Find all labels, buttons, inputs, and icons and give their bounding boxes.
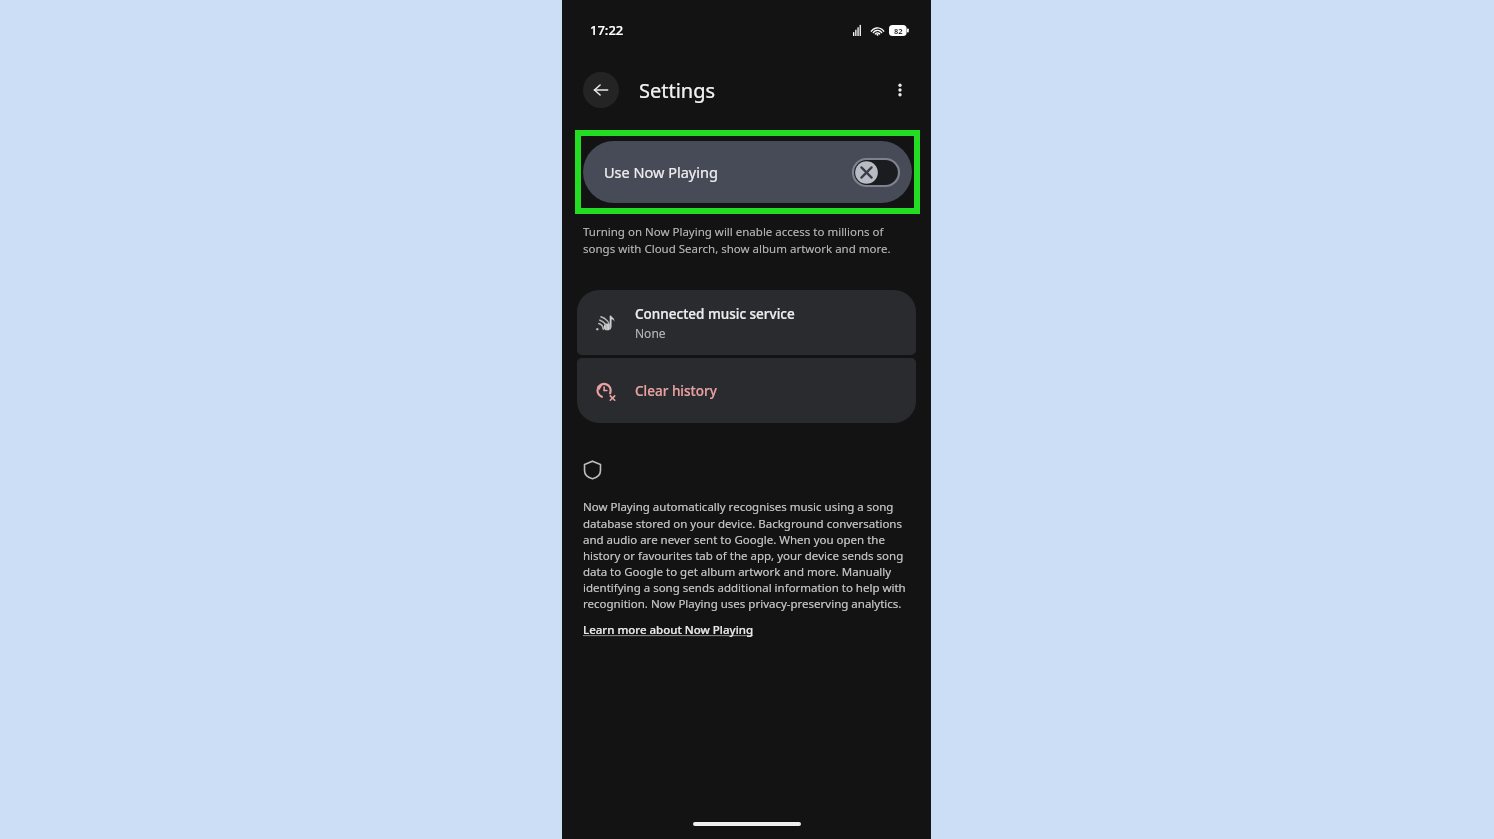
- button[interactable]: Learn more about Now Playing: [583, 622, 754, 638]
- staticText: Learn more about Now Playing: [583, 622, 754, 638]
- staticText: Turning on Now Playing will enable acces…: [583, 224, 905, 257]
- staticText: 82: [894, 26, 903, 36]
- staticText: None: [635, 325, 666, 341]
- staticText: 17:22: [590, 21, 624, 39]
- button[interactable]: More options: [882, 72, 918, 108]
- staticText: Clear history: [635, 382, 717, 400]
- staticText: Now Playing automatically recognises mus…: [583, 499, 913, 611]
- button[interactable]: Use Now Playing: [583, 141, 912, 203]
- staticText: Connected music service: [635, 305, 795, 323]
- button[interactable]: Clear history: [577, 358, 916, 423]
- button[interactable]: Back: [583, 72, 619, 108]
- button[interactable]: Connected music service: [577, 290, 916, 355]
- staticText: Settings: [639, 77, 716, 104]
- staticText: Use Now Playing: [604, 162, 718, 182]
